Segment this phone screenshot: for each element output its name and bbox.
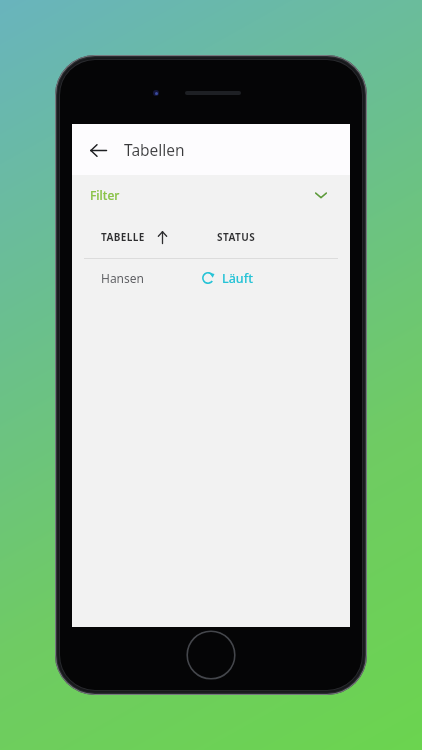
staticText: Filter [90,187,120,203]
other: Expand filter [306,180,336,210]
button[interactable]: TABELLE [101,230,169,244]
button[interactable]: Filter [72,175,350,215]
button[interactable]: Back [80,132,116,168]
button[interactable]: STATUS [217,230,256,244]
other: Running [200,270,216,286]
staticText: Tabellen [124,139,185,160]
button[interactable]: Hansen [72,259,350,297]
staticText: TABELLE [101,230,145,244]
staticText: Hansen [101,270,144,286]
staticText: Läuft [222,270,253,287]
other: Home [186,630,236,680]
